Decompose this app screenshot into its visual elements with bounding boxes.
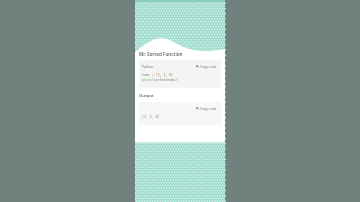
staticText: [3, 5, 8] <box>142 115 160 119</box>
button[interactable]: Copy code <box>195 63 218 70</box>
staticText: print <box>142 78 152 82</box>
staticText: = [5, 3, 8] <box>150 73 173 77</box>
button[interactable]: Python <box>139 60 221 88</box>
staticText: (sorted(nums)) <box>152 78 179 82</box>
staticText: Mr. Sorted Function <box>139 51 183 57</box>
staticText: Python <box>142 64 154 69</box>
button[interactable]: Copy code <box>139 102 221 125</box>
staticText: Output <box>139 93 154 99</box>
staticText: Copy code <box>200 106 217 111</box>
staticText: Copy code <box>200 64 217 69</box>
staticText: nums <box>142 73 150 77</box>
button[interactable]: Copy code <box>195 105 218 112</box>
